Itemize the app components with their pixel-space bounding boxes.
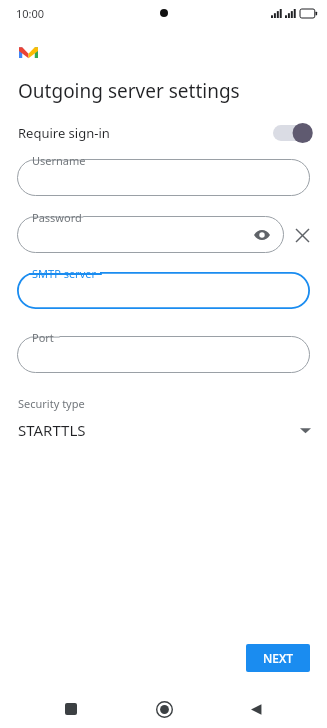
button[interactable]: Back [234, 690, 278, 728]
staticText: Username [32, 153, 86, 168]
button[interactable]: Password [17, 216, 284, 253]
button[interactable]: Require sign-in toggle [273, 122, 313, 144]
staticText: SMTP server [32, 266, 96, 281]
staticText: Security type [18, 396, 85, 411]
staticText: NEXT [263, 650, 294, 666]
button[interactable]: Username [17, 159, 310, 196]
button[interactable]: Show password [249, 222, 275, 248]
button[interactable]: NEXT [246, 644, 310, 672]
button[interactable]: Recents [49, 690, 93, 728]
staticText: Password [32, 210, 82, 225]
button[interactable]: Home [142, 690, 186, 728]
button[interactable]: Clear password [284, 217, 320, 253]
button[interactable]: SMTP server [17, 272, 310, 309]
button[interactable]: Require sign-in [0, 118, 327, 148]
staticText: Port [32, 330, 54, 345]
button[interactable]: Security type [0, 396, 327, 440]
staticText: Outgoing server settings [18, 78, 240, 104]
button[interactable]: Port [17, 336, 310, 373]
staticText: STARTTLS [18, 420, 86, 440]
staticText: Require sign-in [18, 124, 110, 142]
staticText: 10:00 [16, 6, 45, 21]
